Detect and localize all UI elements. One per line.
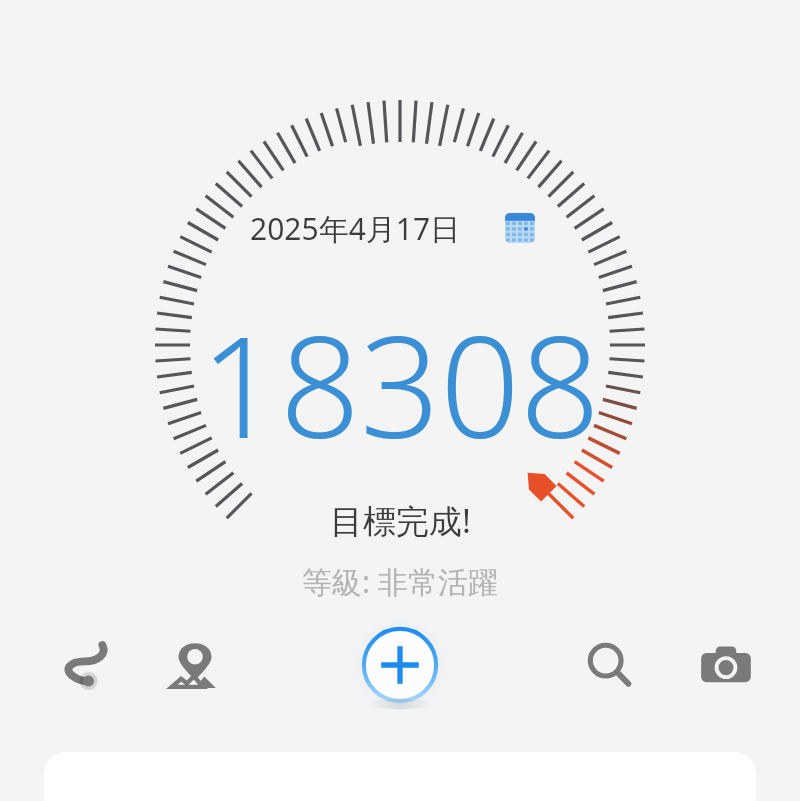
button[interactable]: Places: [148, 622, 242, 710]
button[interactable]: Camera: [679, 622, 773, 710]
button[interactable]: Route: [38, 622, 132, 710]
staticText: 等級: 非常活躍: [302, 561, 498, 602]
staticText: 目標完成!: [330, 498, 471, 543]
staticText: 2025年4月17日: [250, 208, 461, 249]
button[interactable]: Search: [563, 622, 657, 710]
staticText: 18308: [200, 288, 600, 479]
button[interactable]: 2025年4月17日: [250, 205, 550, 251]
button[interactable]: Add: [357, 617, 443, 717]
